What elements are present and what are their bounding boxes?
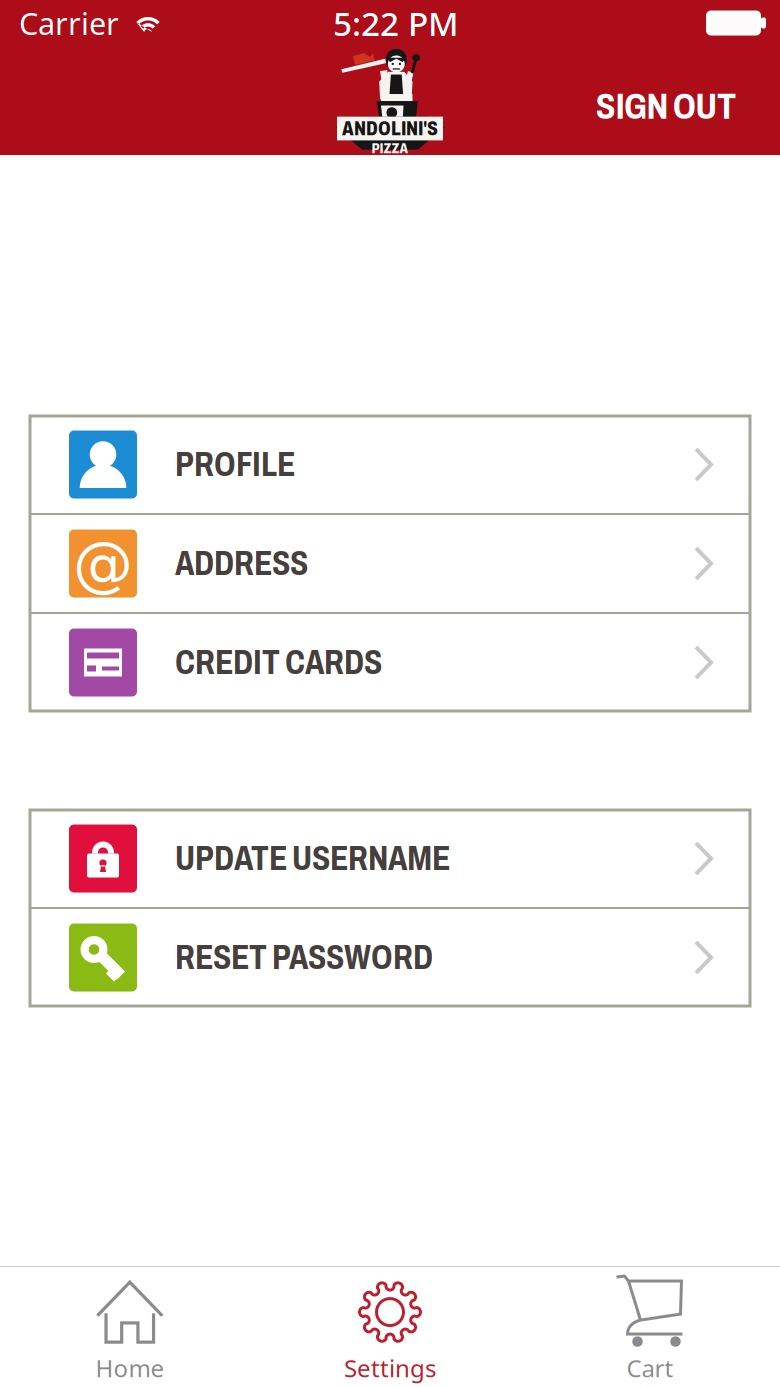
button[interactable]: @ xyxy=(30,515,750,612)
button[interactable]: PROFILE xyxy=(30,416,750,513)
staticText: PIZZA xyxy=(371,140,408,156)
button[interactable]: RESET PASSWORD xyxy=(30,909,750,1006)
button[interactable]: Settings xyxy=(260,1260,520,1387)
staticText: Home xyxy=(95,1352,164,1384)
staticText: @ xyxy=(73,529,133,598)
staticText: PROFILE xyxy=(175,446,295,483)
button[interactable]: CREDIT CARDS xyxy=(30,614,750,711)
staticText: ANDOLINI'S xyxy=(342,118,438,139)
staticText: SIGN OUT xyxy=(596,86,736,127)
staticText: CREDIT CARDS xyxy=(175,644,382,681)
staticText: Cart xyxy=(626,1352,673,1384)
staticText: UPDATE USERNAME xyxy=(175,840,450,877)
staticText: RESET PASSWORD xyxy=(175,939,433,976)
staticText: Carrier xyxy=(19,3,119,43)
button[interactable]: Home xyxy=(0,1260,260,1387)
button[interactable]: SIGN OUT xyxy=(596,66,780,147)
staticText: ADDRESS xyxy=(175,545,308,582)
button[interactable]: UPDATE USERNAME xyxy=(30,810,750,907)
staticText: 5:22 PM xyxy=(333,1,459,45)
staticText: Settings xyxy=(344,1352,436,1384)
button[interactable]: Cart xyxy=(520,1260,780,1387)
